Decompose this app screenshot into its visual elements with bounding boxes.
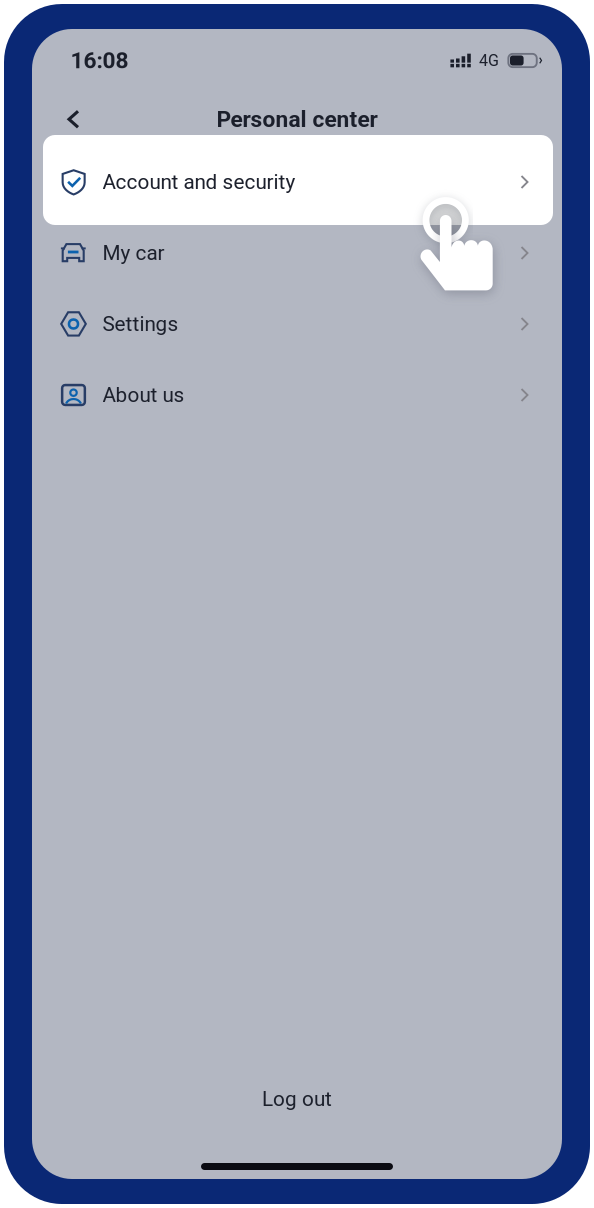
button[interactable]: Account and security bbox=[43, 146, 553, 217]
button[interactable]: About us bbox=[43, 359, 553, 430]
button[interactable]: Settings bbox=[43, 288, 553, 359]
staticText: Log out bbox=[262, 1087, 332, 1111]
staticText: 4G bbox=[479, 51, 499, 70]
button[interactable]: My car bbox=[43, 217, 553, 288]
staticText: Account and security bbox=[102, 170, 295, 194]
staticText: Personal center bbox=[216, 106, 377, 133]
staticText: My car bbox=[102, 241, 164, 265]
staticText: About us bbox=[102, 383, 184, 407]
staticText: 16:08 bbox=[70, 47, 128, 74]
staticText: Settings bbox=[102, 312, 178, 336]
button[interactable]: Log out bbox=[32, 1075, 562, 1123]
button[interactable]: Back bbox=[51, 98, 96, 141]
